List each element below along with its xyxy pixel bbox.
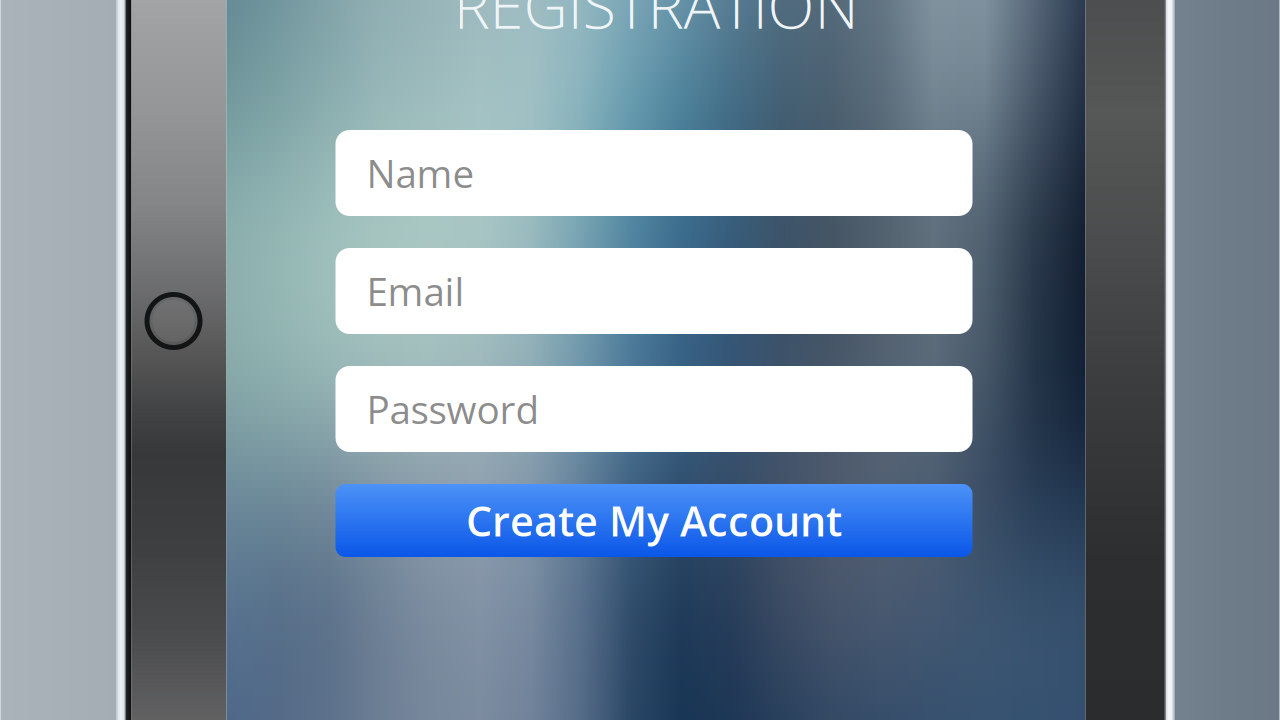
staticText: REGISTRATION	[453, 0, 858, 47]
staticText: Password	[366, 383, 539, 435]
staticText: Name	[366, 147, 474, 199]
button[interactable]: Email	[335, 248, 972, 334]
button[interactable]: Password	[335, 366, 972, 452]
button[interactable]: Create My Account	[335, 484, 972, 557]
staticText: Email	[366, 265, 464, 317]
staticText: Create My Account	[466, 492, 842, 549]
button[interactable]: Name	[335, 130, 972, 216]
